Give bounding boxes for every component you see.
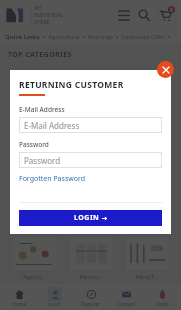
- staticText: RETURNING CUSTOMER: [19, 79, 124, 91]
- button[interactable]: Corporate Gifts: [121, 33, 165, 41]
- staticText: Electro...: [79, 273, 104, 281]
- button[interactable]: Cart: [154, 4, 176, 26]
- staticText: Deals: [156, 301, 169, 308]
- staticText: INDUSTRIAL: [34, 12, 64, 19]
- staticText: 0: [170, 7, 173, 13]
- button[interactable]: Menu: [114, 5, 134, 25]
- button[interactable]: Electro...: [65, 236, 117, 281]
- staticText: E-Mail Address: [24, 120, 80, 131]
- staticText: Password: [24, 155, 61, 166]
- button[interactable]: Quick Links: [5, 33, 40, 41]
- staticText: Agricu...: [23, 273, 46, 281]
- button[interactable]: Register: [74, 287, 108, 308]
- button[interactable]: E-Mail Address: [19, 117, 162, 133]
- staticText: HandT...: [135, 273, 159, 281]
- button[interactable]: Deals: [145, 287, 179, 308]
- staticText: E-Mail Address: [19, 105, 65, 114]
- staticText: Login: [48, 301, 62, 308]
- button[interactable]: Close: [157, 61, 174, 78]
- staticText: Register: [81, 301, 101, 308]
- button[interactable]: Forgotten Password: [19, 174, 86, 184]
- button[interactable]: LOGIN: [19, 210, 162, 226]
- button[interactable]: Home: [2, 287, 36, 308]
- staticText: MY: [34, 5, 42, 12]
- staticText: Password: [19, 140, 49, 149]
- button[interactable]: Password: [19, 152, 162, 168]
- button[interactable]: Agricu...: [8, 236, 60, 281]
- staticText: TOP CATEGORIES: [8, 50, 72, 60]
- button[interactable]: Search: [134, 5, 154, 25]
- button[interactable]: Contact: [109, 287, 143, 308]
- button[interactable]: Agriculture: [48, 33, 80, 41]
- staticText: LOGIN: [74, 213, 100, 223]
- staticText: STORE: [34, 19, 50, 26]
- button[interactable]: HandT...: [121, 236, 173, 281]
- staticText: Contact: [117, 301, 136, 308]
- staticText: Home: [12, 301, 27, 308]
- button[interactable]: Login: [38, 287, 72, 308]
- button[interactable]: Bearings: [88, 33, 113, 41]
